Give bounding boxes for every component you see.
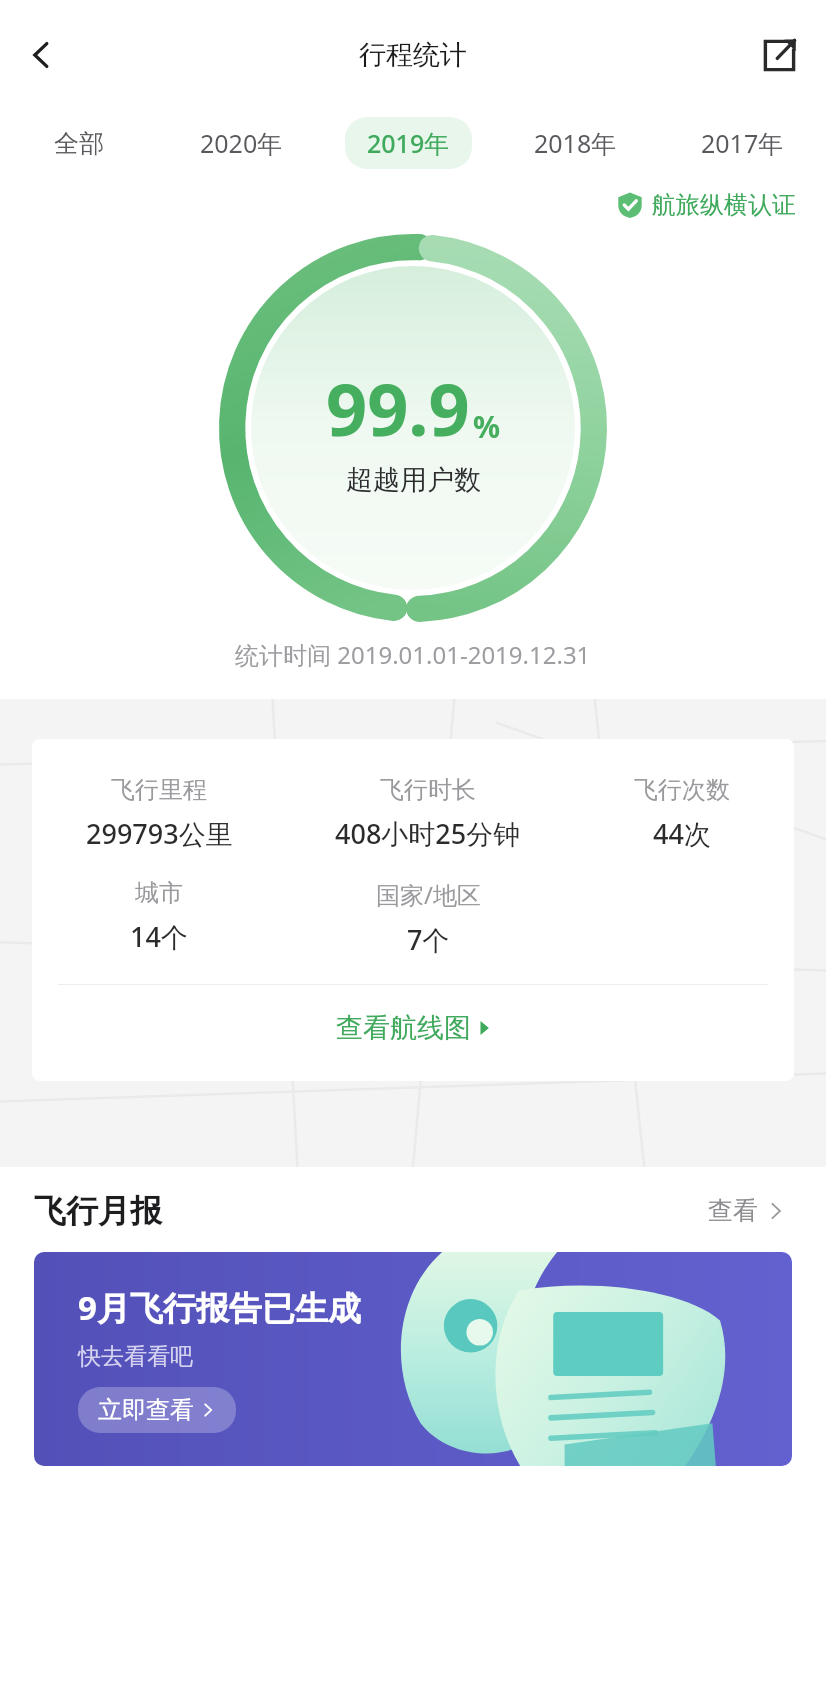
staticText: 全部: [54, 128, 104, 159]
staticText: 2017年: [701, 126, 784, 160]
button[interactable]: 全部: [32, 119, 126, 168]
staticText: 408小时25分钟: [335, 815, 521, 852]
staticText: 299793公里: [86, 815, 233, 852]
button[interactable]: 2017年: [679, 117, 806, 169]
staticText: 99.9: [326, 359, 470, 457]
button[interactable]: 查看: [702, 1189, 792, 1232]
button[interactable]: 飞行时长: [286, 775, 570, 852]
button[interactable]: 国家/地区: [286, 878, 570, 958]
staticText: 飞行里程: [111, 775, 207, 805]
staticText: 快去看看吧: [78, 1342, 193, 1371]
button[interactable]: 城市: [32, 878, 286, 955]
staticText: 2020年: [200, 126, 283, 160]
staticText: 飞行时长: [380, 775, 476, 805]
staticText: 9月飞行报告已生成: [78, 1285, 361, 1330]
button[interactable]: 查看航线图: [32, 985, 794, 1071]
staticText: 2019年: [367, 126, 450, 160]
staticText: 航旅纵横认证: [652, 190, 796, 220]
staticText: 行程统计: [359, 38, 467, 72]
staticText: 7个: [407, 921, 450, 958]
staticText: 查看航线图: [336, 1011, 471, 1045]
button[interactable]: Share: [748, 23, 812, 87]
staticText: 44次: [653, 815, 711, 852]
staticText: 统计时间 2019.01.01-2019.12.31: [235, 638, 591, 671]
button[interactable]: 9月飞行报告已生成: [34, 1252, 792, 1466]
button[interactable]: 飞行次数: [570, 775, 794, 852]
button[interactable]: 2020年: [178, 117, 305, 169]
staticText: 飞行次数: [634, 775, 730, 805]
staticText: 立即查看: [98, 1395, 194, 1425]
staticText: 城市: [135, 878, 183, 908]
staticText: 国家/地区: [376, 878, 481, 911]
button[interactable]: 2019年: [345, 117, 472, 169]
staticText: 超越用户数: [346, 463, 481, 497]
staticText: %: [473, 406, 501, 447]
staticText: 2018年: [534, 126, 617, 160]
staticText: 查看: [708, 1195, 758, 1226]
button[interactable]: 2018年: [512, 117, 639, 169]
staticText: 14个: [130, 918, 188, 955]
staticText: 飞行月报: [34, 1191, 162, 1231]
button[interactable]: 立即查看: [78, 1387, 236, 1433]
button[interactable]: 飞行里程: [32, 775, 286, 852]
button[interactable]: Back: [10, 23, 74, 87]
